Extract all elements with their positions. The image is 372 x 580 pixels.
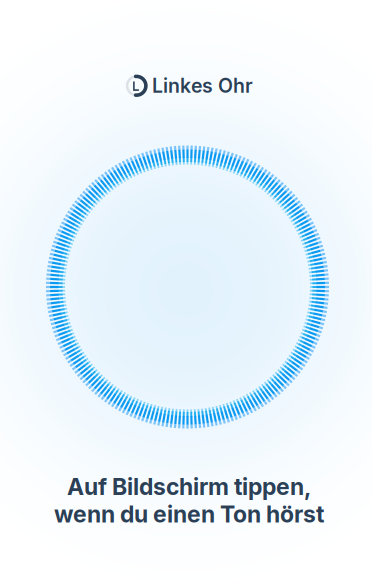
staticText: wenn du einen Ton hörst <box>54 500 324 528</box>
button[interactable]: Linkes Ohr <box>0 0 372 580</box>
staticText: Linkes Ohr <box>152 74 253 98</box>
staticText: Auf Bildschirm tippen, <box>67 473 311 501</box>
